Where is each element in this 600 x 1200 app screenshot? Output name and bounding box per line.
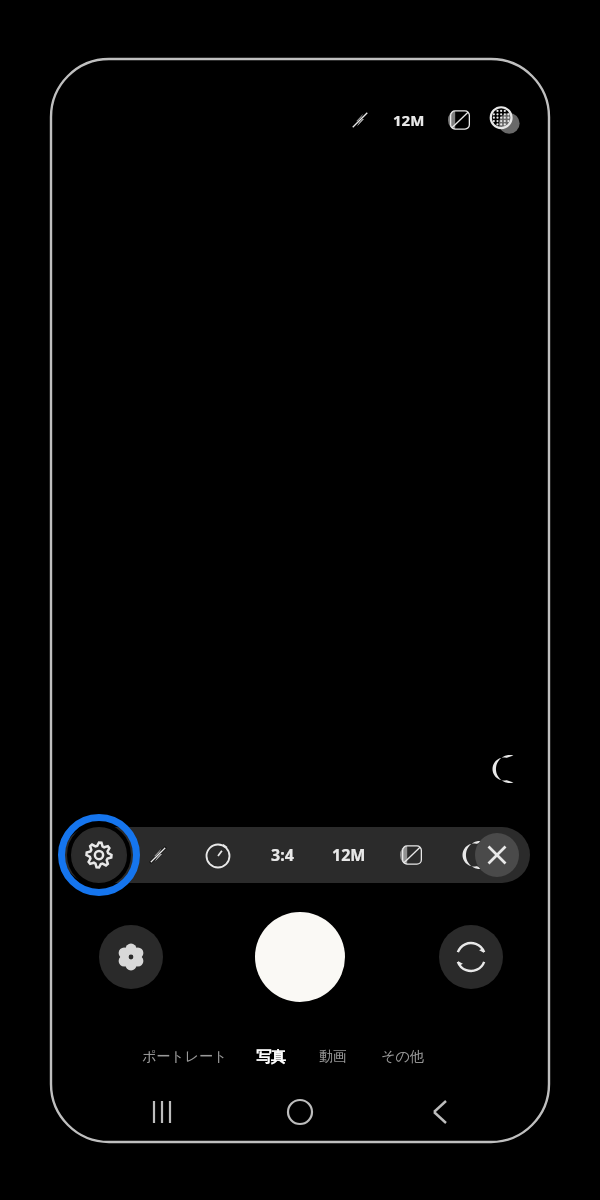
button[interactable]: Night mode	[482, 749, 522, 789]
button[interactable]: Settings	[71, 827, 127, 883]
button[interactable]: Recents	[120, 1090, 204, 1134]
button[interactable]: Flash off	[138, 835, 178, 875]
staticText: 12M	[393, 110, 425, 130]
button[interactable]: Home	[258, 1090, 342, 1134]
button[interactable]: Flash off	[340, 100, 380, 140]
button[interactable]: Scene optimizer off	[392, 835, 432, 875]
button[interactable]: Filters	[99, 925, 163, 989]
button[interactable]: その他	[364, 1041, 440, 1073]
button[interactable]: 写真	[240, 1041, 302, 1073]
staticText: その他	[381, 1048, 424, 1066]
button[interactable]: More options	[482, 100, 526, 140]
button[interactable]: 12M	[320, 835, 378, 875]
button[interactable]: ポートレート	[130, 1041, 240, 1073]
button[interactable]: Take photo	[255, 912, 345, 1002]
staticText: 3:4	[271, 844, 294, 866]
button[interactable]: Scene optimizer off	[438, 100, 482, 140]
button[interactable]: Switch camera	[439, 925, 503, 989]
staticText: 動画	[319, 1048, 347, 1066]
button[interactable]: Back	[398, 1090, 482, 1134]
staticText: ポートレート	[142, 1048, 228, 1066]
button[interactable]: 動画	[302, 1041, 364, 1073]
button[interactable]: 3:4	[256, 835, 308, 875]
staticText: 12M	[332, 844, 366, 866]
button[interactable]: Close	[475, 833, 519, 877]
staticText: 写真	[256, 1048, 286, 1067]
button[interactable]: 12M	[380, 100, 438, 140]
button[interactable]: Timer	[198, 835, 238, 875]
button[interactable]: Night mode	[448, 835, 488, 875]
